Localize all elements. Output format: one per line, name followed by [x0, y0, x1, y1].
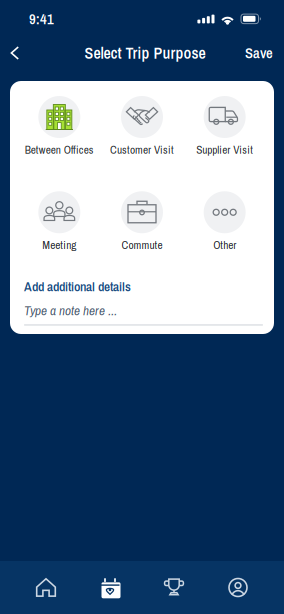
button[interactable]: Type a note here ... — [10, 295, 274, 325]
button[interactable]: Home — [14, 561, 78, 614]
button[interactable]: Other — [183, 191, 266, 253]
button[interactable]: Commute — [101, 191, 183, 253]
button[interactable]: Save — [240, 38, 278, 68]
staticText: Add additional details — [24, 277, 131, 295]
staticText: Supplier Visit — [196, 142, 253, 157]
button[interactable]: Supplier Visit — [183, 96, 266, 157]
staticText: 9:41 — [29, 9, 54, 29]
staticText: Type a note here ... — [24, 301, 117, 319]
button[interactable]: Profile — [206, 561, 270, 614]
button[interactable]: Between Offices — [18, 96, 101, 157]
button[interactable]: Trips — [78, 561, 142, 614]
staticText: Save — [245, 43, 273, 63]
button[interactable]: Meeting — [18, 191, 101, 253]
staticText: Meeting — [42, 237, 76, 253]
staticText: Commute — [121, 237, 162, 253]
button[interactable]: Back — [3, 38, 27, 68]
button[interactable]: Customer Visit — [101, 96, 183, 157]
staticText: Between Offices — [25, 142, 94, 157]
staticText: Customer Visit — [110, 142, 174, 157]
button[interactable]: Add additional details — [10, 252, 274, 295]
button[interactable]: Rewards — [142, 561, 206, 614]
staticText: Other — [213, 237, 236, 253]
staticText: Select Trip Purpose — [84, 42, 205, 64]
